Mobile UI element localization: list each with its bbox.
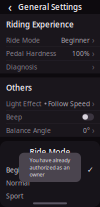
staticText: ›	[92, 98, 94, 109]
staticText: You have already authorized as an owner	[29, 157, 70, 178]
staticText: ›	[92, 125, 94, 136]
staticText: Beep	[6, 112, 22, 121]
staticText: Normal	[6, 178, 30, 187]
button[interactable]: Beep	[0, 110, 100, 123]
staticText: ›	[92, 48, 94, 59]
staticText: 0°	[83, 126, 90, 135]
staticText: Pedal Hardness	[6, 49, 56, 58]
staticText: Ride Mode	[29, 147, 70, 157]
staticText: Others	[6, 82, 32, 93]
button[interactable]: Light Effect	[0, 97, 100, 110]
button[interactable]: Balance Angle	[0, 124, 100, 137]
button[interactable]: Normal	[0, 176, 100, 189]
staticText: Sport	[6, 191, 23, 200]
button[interactable]: Ride Mode	[0, 34, 100, 47]
button[interactable]: Pedal Hardness	[0, 47, 100, 60]
staticText: ✓	[87, 165, 94, 174]
staticText: Follow Speed	[48, 99, 90, 108]
staticText: Balance Angle	[6, 126, 51, 135]
staticText: Ride Mode	[6, 36, 40, 45]
staticText: ›	[92, 62, 94, 72]
staticText: Light Effect	[6, 99, 41, 108]
staticText: Diagnosis	[6, 62, 37, 71]
button[interactable]: Beginner	[0, 163, 100, 176]
button[interactable]: Sport	[0, 189, 100, 202]
staticText: ‹	[8, 0, 12, 15]
button[interactable]: Back	[3, 0, 17, 14]
staticText: General Settings	[18, 2, 82, 12]
staticText: Riding Experience	[6, 19, 74, 30]
staticText: 100%	[72, 49, 90, 58]
staticText: Beginner	[61, 36, 90, 45]
staticText: ›	[92, 35, 94, 45]
staticText: Beginner	[6, 165, 35, 174]
button[interactable]: Diagnosis	[0, 60, 100, 73]
